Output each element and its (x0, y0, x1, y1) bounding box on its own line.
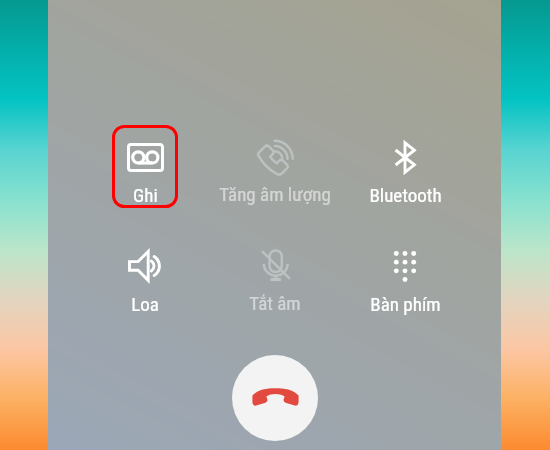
button[interactable]: Tăng âm lượng (195, 116, 355, 204)
button[interactable]: Tắt âm (195, 225, 355, 313)
button[interactable]: Bluetooth (325, 117, 485, 205)
staticText: Bluetooth (369, 184, 442, 206)
staticText: Tăng âm lượng (219, 183, 331, 205)
staticText: Tắt âm (249, 292, 301, 314)
button[interactable]: Bàn phím (325, 226, 485, 314)
staticText: Bàn phím (370, 293, 441, 315)
staticText: Ghi (133, 184, 158, 206)
button[interactable]: End call (232, 355, 318, 441)
staticText: Loa (131, 293, 159, 315)
button[interactable]: Loa (65, 226, 225, 314)
button[interactable]: Ghi (65, 117, 225, 205)
